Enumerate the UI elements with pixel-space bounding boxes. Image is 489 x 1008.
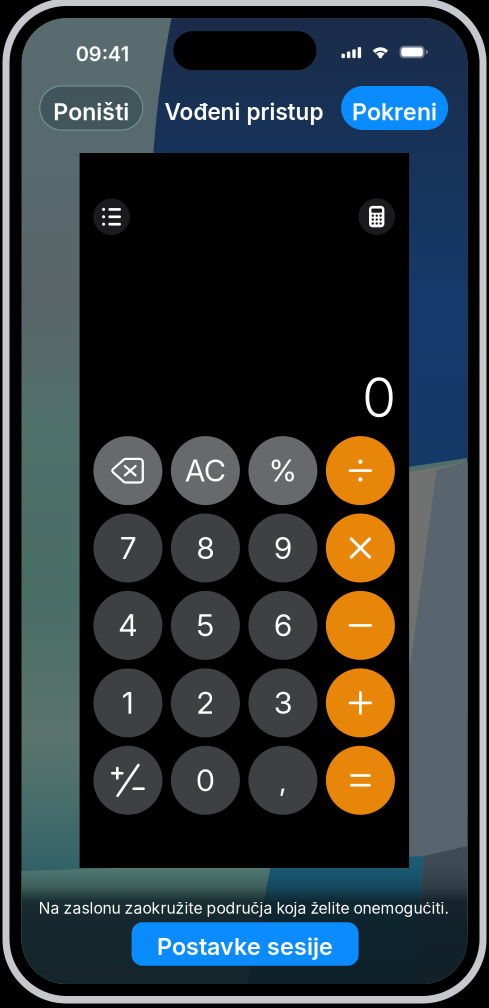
button[interactable]: Postavke sesije (132, 922, 359, 966)
staticText: Vođeni pristup (165, 98, 324, 125)
staticText: 8 (196, 530, 214, 566)
staticText: 9 (274, 530, 292, 566)
staticText: 1 (122, 685, 134, 721)
button[interactable]: Calculator (358, 198, 395, 235)
button[interactable]: Poništi (40, 86, 143, 130)
staticText: 5 (196, 607, 214, 644)
button[interactable]: , (248, 746, 317, 815)
staticText: 0 (362, 364, 396, 431)
button[interactable] (326, 591, 395, 660)
button[interactable]: 7 (93, 513, 162, 582)
button[interactable]: 1 (93, 668, 162, 737)
staticText: 6 (274, 607, 292, 644)
button[interactable] (93, 746, 162, 815)
staticText: 0 (196, 762, 215, 799)
staticText: Poništi (53, 98, 129, 126)
button[interactable]: 9 (248, 513, 317, 582)
staticText: 3 (274, 685, 292, 721)
button[interactable]: 3 (248, 668, 317, 737)
staticText: Pokreni (352, 98, 437, 126)
button[interactable]: 6 (248, 591, 317, 660)
staticText: AC (185, 452, 226, 489)
staticText: % (269, 452, 297, 489)
staticText: 2 (196, 685, 214, 721)
button[interactable] (326, 513, 395, 582)
staticText: , (279, 762, 287, 799)
staticText: Postavke sesije (157, 932, 333, 961)
button[interactable]: History (93, 199, 130, 235)
button[interactable]: AC (171, 436, 240, 505)
button[interactable] (326, 746, 395, 815)
button[interactable]: 8 (171, 513, 240, 582)
staticText: 4 (118, 607, 137, 644)
button[interactable] (326, 668, 395, 737)
button[interactable] (93, 436, 162, 505)
button[interactable]: 0 (171, 746, 240, 815)
button[interactable]: 4 (93, 591, 162, 660)
staticText: 7 (120, 530, 136, 566)
staticText: 09:41 (76, 42, 129, 66)
button[interactable]: % (248, 436, 317, 505)
button[interactable]: 2 (171, 668, 240, 737)
button[interactable]: Pokreni (341, 86, 448, 130)
staticText: Na zaslonu zaokružite područja koja želi… (38, 898, 449, 917)
button[interactable]: 5 (171, 591, 240, 660)
button[interactable] (326, 436, 395, 505)
